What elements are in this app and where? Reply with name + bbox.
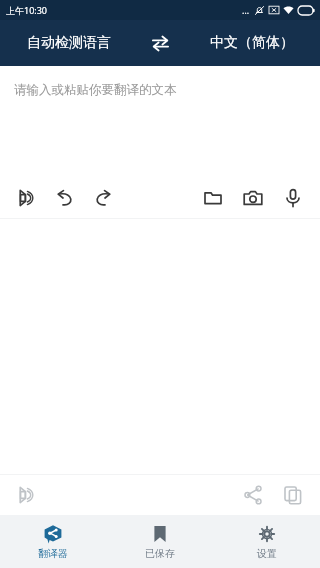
staticText: 自动检测语言 bbox=[27, 34, 111, 52]
button[interactable]: 已保存 bbox=[106, 515, 213, 568]
button[interactable]: 设置 bbox=[213, 515, 320, 568]
button[interactable]: 翻译器 bbox=[0, 515, 106, 568]
staticText: … bbox=[242, 4, 250, 16]
staticText: 翻译器 bbox=[38, 547, 68, 560]
staticText: 上午10:30 bbox=[6, 4, 48, 16]
button[interactable]: Redo bbox=[88, 183, 118, 213]
button[interactable]: 自动检测语言 bbox=[0, 20, 137, 66]
button[interactable]: Copy bbox=[278, 480, 308, 510]
staticText: 中文（简体） bbox=[210, 34, 294, 52]
button[interactable]: Open file bbox=[198, 183, 228, 213]
staticText: 设置 bbox=[257, 547, 277, 560]
button[interactable]: Undo bbox=[50, 183, 80, 213]
button[interactable]: 请输入或粘贴你要翻译的文本 bbox=[0, 66, 320, 178]
staticText: 已保存 bbox=[145, 547, 175, 560]
button[interactable]: Voice input bbox=[278, 183, 308, 213]
button[interactable]: Share bbox=[238, 480, 268, 510]
button[interactable]: Speak source text bbox=[12, 183, 42, 213]
button[interactable]: 中文（简体） bbox=[183, 20, 320, 66]
button[interactable]: Camera translate bbox=[238, 183, 268, 213]
button[interactable]: Speak translation bbox=[12, 480, 42, 510]
button[interactable]: Swap languages bbox=[137, 20, 183, 66]
staticText: 请输入或粘贴你要翻译的文本 bbox=[14, 82, 177, 98]
